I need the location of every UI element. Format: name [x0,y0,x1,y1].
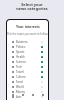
button[interactable]: Money [7,89,48,94]
button[interactable]: Sports [7,49,48,54]
staticText: World [16,85,24,89]
button[interactable]: World [7,84,48,89]
staticText: Arts [16,95,22,99]
button[interactable]: Travel [7,69,48,74]
staticText: Culture [16,75,26,79]
button[interactable]: Science [7,59,48,64]
staticText: Select your news categories [16,2,48,12]
staticText: Business [16,40,28,44]
button[interactable]: Home [7,90,18,100]
button[interactable]: Food [7,79,48,84]
button[interactable]: Health [7,54,48,59]
staticText: Science [16,60,26,64]
button[interactable]: Politics [7,44,48,49]
staticText: Your interests [16,24,40,29]
button[interactable]: Saved [28,90,38,100]
staticText: Pick the topics you want to follow [7,32,48,36]
button[interactable]: Arts [7,94,48,99]
staticText: Tech [16,65,23,69]
staticText: Money [16,90,25,94]
button[interactable]: Culture [7,74,48,79]
button[interactable]: Profile [38,90,48,100]
staticText: Politics [16,45,26,49]
staticText: Sports [16,50,25,54]
staticText: Health [16,55,25,59]
button[interactable]: Search [18,90,28,100]
staticText: Food [16,80,23,84]
staticText: Travel [16,70,24,74]
button[interactable]: Business [7,39,48,44]
button[interactable]: Tech [7,64,48,69]
